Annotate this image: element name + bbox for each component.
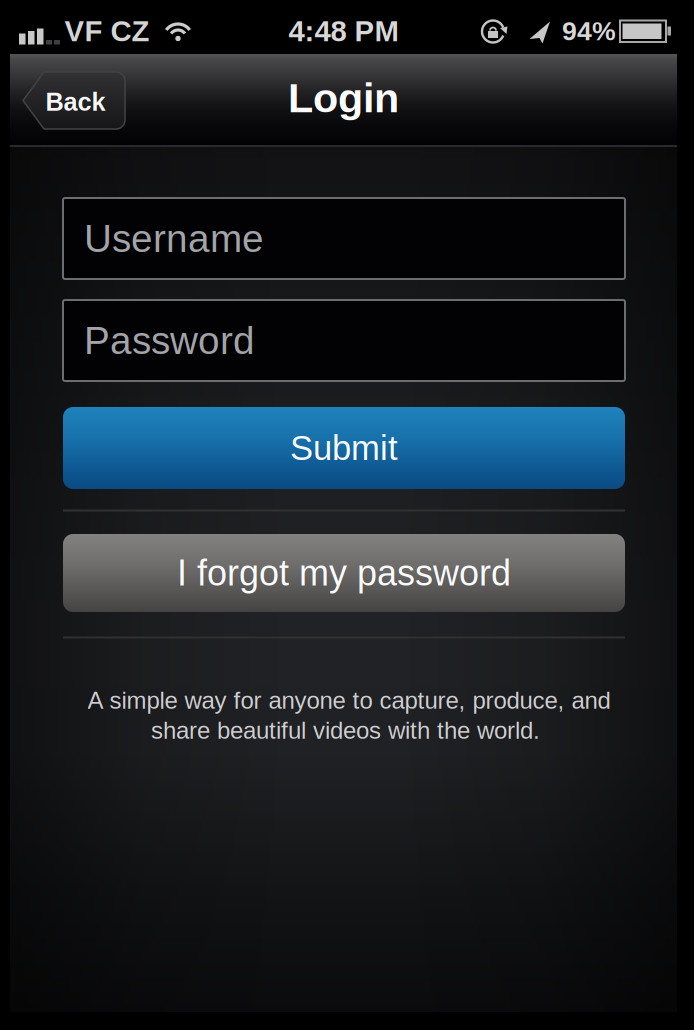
staticText: I forgot my password [177, 553, 511, 593]
button[interactable]: Submit [63, 407, 625, 489]
staticText: Login [288, 75, 399, 121]
button[interactable]: Username [63, 198, 625, 279]
button[interactable]: Back [23, 72, 125, 129]
staticText: 4:48 PM [288, 15, 398, 47]
button[interactable]: Password [63, 300, 625, 381]
staticText: share beautiful videos with the world. [151, 717, 540, 744]
button[interactable]: I forgot my password [63, 534, 625, 612]
staticText: VF CZ [64, 15, 149, 47]
staticText: 94% [562, 16, 616, 46]
staticText: Back [45, 88, 105, 116]
staticText: Username [84, 217, 264, 260]
staticText: Submit [290, 429, 398, 467]
staticText: Password [84, 319, 255, 362]
staticText: A simple way for anyone to capture, prod… [87, 687, 610, 714]
